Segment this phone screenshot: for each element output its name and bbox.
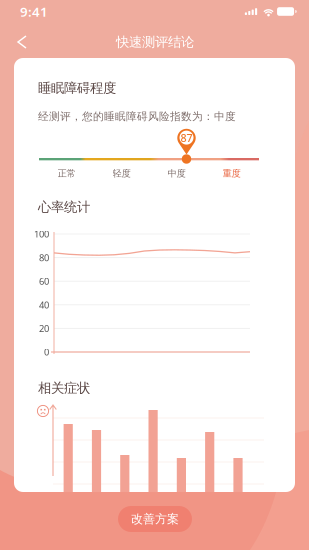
staticText: 87 — [180, 131, 192, 145]
staticText: 睡眠障碍程度 — [38, 80, 116, 96]
staticText: 0 — [44, 346, 49, 358]
staticText: 快速测评结论 — [116, 34, 194, 50]
staticText: 相关症状 — [38, 380, 90, 396]
button[interactable]: 改善方案 — [118, 506, 192, 532]
staticText: 正常 — [57, 168, 75, 179]
staticText: 心率统计 — [38, 199, 90, 215]
button[interactable]: Back — [5, 24, 39, 60]
staticText: 100 — [34, 228, 49, 240]
staticText: 80 — [39, 251, 49, 264]
staticText: 重度 — [222, 168, 240, 179]
staticText: 中度 — [167, 168, 185, 179]
staticText: 经测评，您的睡眠障碍风险指数为：中度 — [38, 110, 236, 123]
staticText: 20 — [39, 322, 49, 335]
staticText: 60 — [39, 275, 49, 287]
staticText: 改善方案 — [131, 512, 179, 526]
staticText: 9:41 — [20, 3, 48, 20]
staticText: 轻度 — [112, 168, 130, 179]
staticText: 40 — [39, 299, 49, 311]
